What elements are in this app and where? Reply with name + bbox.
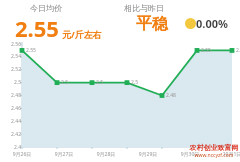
staticText: 2.55 [201, 47, 211, 54]
staticText: 0.00% [196, 16, 228, 31]
button[interactable]: 农村创业致富网 [188, 143, 240, 161]
staticText: 2.55 [15, 13, 59, 43]
staticText: 9月26日 [8, 151, 36, 158]
staticText: 2.5 [131, 79, 139, 86]
staticText: 2.4 [1, 144, 21, 151]
button[interactable]: 今日均价 [10, 1, 118, 37]
staticText: 2.55 [26, 47, 36, 54]
staticText: 相比与昨日 [124, 3, 164, 13]
staticText: 2.56 [1, 41, 21, 48]
staticText: 10月1日 [218, 151, 240, 158]
staticText: 2.44 [1, 118, 21, 125]
staticText: 2.52 [1, 66, 21, 73]
staticText: 2.42 [1, 131, 21, 138]
staticText: 2.55 [236, 47, 240, 54]
staticText: 9月30日 [176, 151, 204, 158]
staticText: 9月28日 [92, 151, 120, 158]
staticText: 2.54 [1, 53, 21, 60]
other: Price unchanged indicator [185, 18, 196, 29]
staticText: 今日均价 [30, 3, 62, 13]
staticText: 元/斤左右 [62, 28, 102, 40]
staticText: 平稳 [136, 14, 168, 34]
staticText: 2.5 [1, 79, 21, 86]
staticText: 2.5 [96, 79, 104, 86]
staticText: 2.48 [166, 92, 176, 99]
staticText: 2.46 [1, 105, 21, 112]
staticText: 9月29日 [134, 151, 162, 158]
staticText: 2.5 [61, 79, 69, 86]
staticText: 9月27日 [50, 151, 78, 158]
staticText: www.nccyzf.com [188, 152, 240, 159]
staticText: 2.48 [1, 92, 21, 99]
button[interactable]: 相比与昨日 [120, 1, 238, 37]
staticText: 农村创业致富网 [188, 143, 240, 152]
